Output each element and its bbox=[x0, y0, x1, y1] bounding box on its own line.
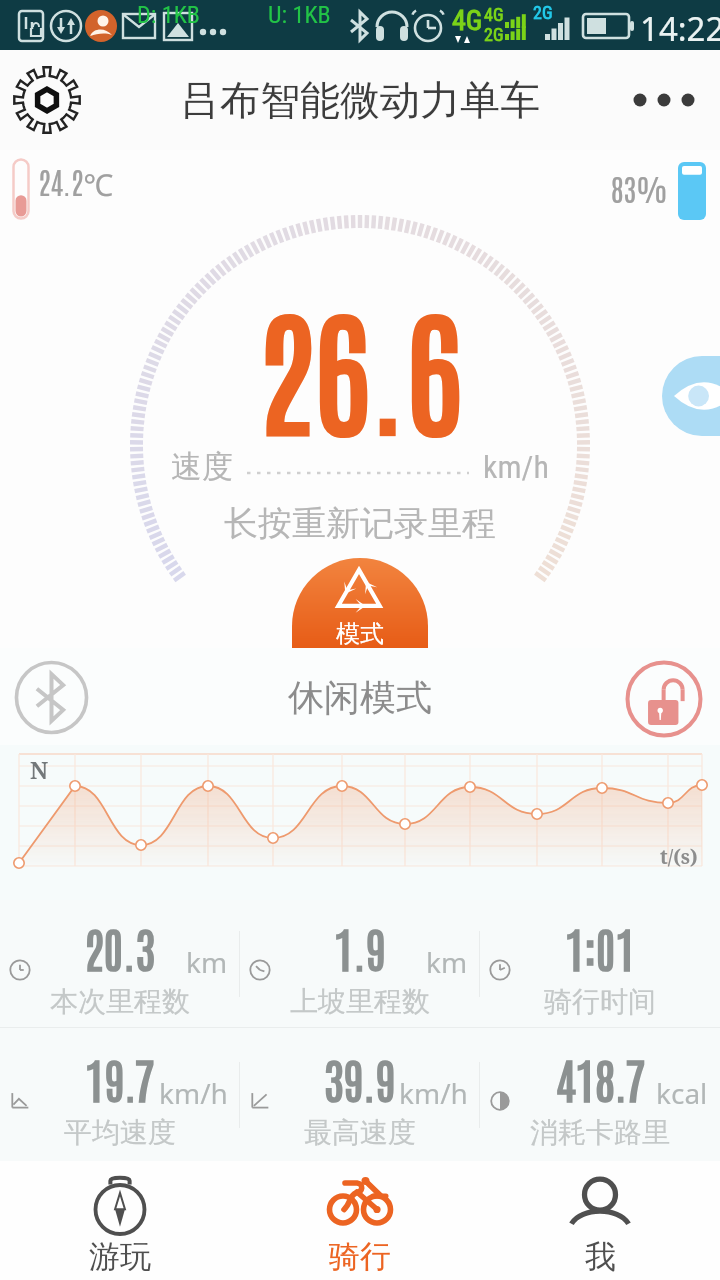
staticText: t/(s) bbox=[660, 844, 698, 870]
staticText: km/h bbox=[483, 448, 549, 486]
staticText: D: 1KB bbox=[137, 1, 200, 29]
staticText: 游玩 bbox=[89, 1237, 151, 1276]
staticText: 14:22 bbox=[640, 6, 720, 51]
staticText: kcal bbox=[656, 1074, 708, 1112]
staticText: km bbox=[186, 943, 228, 981]
button[interactable]: More options bbox=[626, 70, 706, 130]
staticText: 83% bbox=[611, 168, 668, 207]
staticText: U: 1KB bbox=[268, 1, 331, 29]
staticText: 2G bbox=[484, 24, 504, 45]
button[interactable]: 20.3 bbox=[0, 900, 240, 1027]
button[interactable]: 游玩 bbox=[0, 1161, 240, 1280]
staticText: km bbox=[426, 943, 468, 981]
staticText: 26.6 bbox=[257, 277, 463, 453]
button[interactable]: Bluetooth bbox=[15, 661, 88, 734]
staticText: 模式 bbox=[336, 619, 384, 648]
staticText: 休闲模式 bbox=[288, 675, 432, 720]
button[interactable]: Preview ride bbox=[662, 356, 720, 436]
staticText: 39.9 bbox=[324, 1048, 396, 1109]
staticText: N bbox=[30, 754, 49, 785]
button[interactable]: 19.7 bbox=[0, 1028, 240, 1161]
staticText: 1.9 bbox=[334, 917, 386, 978]
staticText: 骑行 bbox=[329, 1237, 391, 1276]
button[interactable]: 模式 bbox=[292, 558, 428, 648]
staticText: 速度 bbox=[171, 447, 233, 486]
staticText: 418.7 bbox=[556, 1048, 645, 1109]
staticText: 2G bbox=[533, 2, 553, 23]
staticText: 1:01 bbox=[565, 917, 636, 978]
staticText: 19.7 bbox=[85, 1048, 155, 1109]
staticText: 本次里程数 bbox=[50, 984, 190, 1019]
button[interactable]: 39.9 bbox=[240, 1028, 480, 1161]
staticText: 平均速度 bbox=[64, 1115, 176, 1150]
staticText: 上坡里程数 bbox=[290, 984, 430, 1019]
staticText: km/h bbox=[399, 1074, 468, 1112]
button[interactable]: Unlock bbox=[626, 661, 702, 737]
staticText: 24.2℃ bbox=[38, 161, 114, 204]
button[interactable]: 骑行 bbox=[240, 1161, 480, 1280]
staticText: 4G bbox=[484, 4, 504, 25]
button[interactable]: 1:01 bbox=[480, 900, 720, 1027]
staticText: 消耗卡路里 bbox=[530, 1115, 670, 1150]
staticText: 我 bbox=[585, 1237, 616, 1276]
button[interactable]: Settings bbox=[12, 65, 82, 135]
button[interactable]: 1.9 bbox=[240, 900, 480, 1027]
staticText: 4G bbox=[452, 4, 483, 37]
staticText: 吕布智能微动力单车 bbox=[180, 75, 540, 125]
staticText: km/h bbox=[159, 1074, 228, 1112]
button[interactable]: 418.7 bbox=[480, 1028, 720, 1161]
button[interactable]: 我 bbox=[480, 1161, 720, 1280]
staticText: 长按重新记录里程 bbox=[224, 502, 496, 545]
staticText: 骑行时间 bbox=[544, 984, 656, 1019]
staticText: 20.3 bbox=[84, 917, 156, 978]
staticText: 最高速度 bbox=[304, 1115, 416, 1150]
